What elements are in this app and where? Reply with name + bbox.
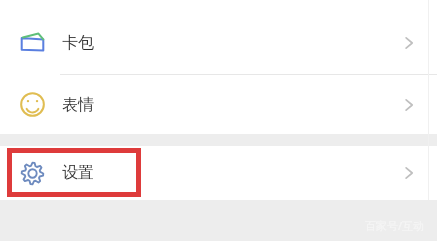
staticText: 卡包 (62, 33, 94, 53)
button[interactable]: 卡包 (0, 10, 437, 75)
staticText: 设置 (62, 163, 94, 183)
button[interactable]: 表情 (0, 75, 437, 134)
other: 设置 (19, 160, 46, 187)
staticText: 表情 (62, 95, 94, 115)
other: 表情 (19, 91, 46, 118)
button[interactable]: 设置 (0, 146, 437, 200)
other: 卡包 (19, 29, 46, 56)
